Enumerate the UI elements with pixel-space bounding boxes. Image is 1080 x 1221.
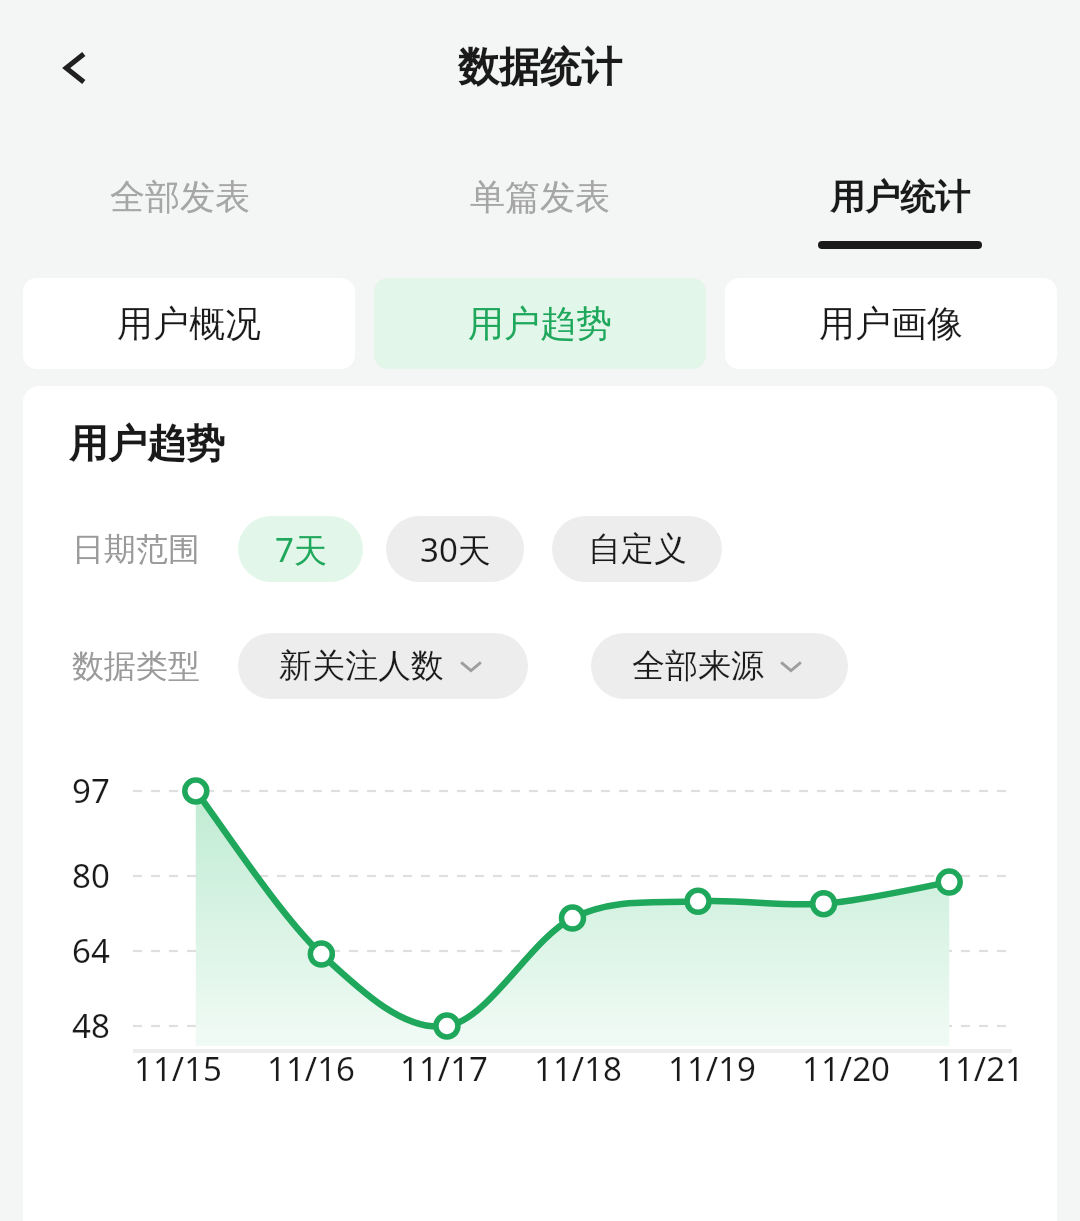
staticText: 数据类型: [72, 646, 200, 686]
staticText: 用户画像: [819, 301, 963, 346]
button[interactable]: 用户画像: [725, 278, 1057, 369]
staticText: 11/20: [802, 1046, 890, 1091]
staticText: 用户统计: [830, 175, 970, 219]
staticText: 64: [72, 928, 110, 973]
staticText: 30天: [420, 527, 491, 572]
button[interactable]: 全部发表: [0, 135, 360, 265]
staticText: 11/15: [134, 1046, 222, 1091]
staticText: 日期范围: [72, 529, 200, 569]
staticText: 97: [72, 768, 110, 813]
staticText: 48: [72, 1003, 110, 1048]
staticText: 11/19: [668, 1046, 756, 1091]
button[interactable]: 自定义: [552, 516, 722, 582]
staticText: 80: [72, 853, 110, 898]
staticText: 用户趋势: [468, 301, 612, 346]
staticText: 新关注人数: [279, 645, 444, 687]
staticText: 7天: [275, 527, 327, 572]
staticText: 全部发表: [110, 175, 250, 219]
staticText: 自定义: [588, 528, 687, 570]
button[interactable]: 用户概况: [23, 278, 355, 369]
staticText: 11/17: [400, 1046, 488, 1091]
button[interactable]: 30天: [386, 516, 524, 582]
button[interactable]: 新关注人数: [238, 633, 528, 699]
staticText: 单篇发表: [470, 175, 610, 219]
button[interactable]: 用户趋势: [374, 278, 706, 369]
button[interactable]: 用户统计: [720, 135, 1080, 265]
button[interactable]: Back: [38, 31, 112, 105]
button[interactable]: 全部来源: [591, 633, 848, 699]
button[interactable]: 7天: [238, 516, 363, 582]
staticText: 全部来源: [632, 645, 764, 687]
button[interactable]: 单篇发表: [360, 135, 720, 265]
staticText: 用户趋势: [69, 419, 225, 468]
staticText: 11/21: [936, 1046, 1024, 1091]
staticText: 11/16: [267, 1046, 355, 1091]
staticText: 11/18: [534, 1046, 622, 1091]
staticText: 数据统计: [458, 42, 622, 94]
staticText: 用户概况: [117, 301, 261, 346]
